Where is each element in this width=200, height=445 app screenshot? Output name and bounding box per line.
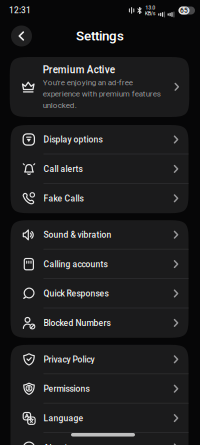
staticText: 65 — [180, 7, 188, 14]
staticText: Fake Calls — [43, 193, 83, 203]
button[interactable]: Blocked Numbers — [10, 308, 188, 338]
staticText: Quick Responses — [43, 289, 108, 299]
staticText: unlocked. — [43, 100, 77, 110]
staticText: About — [43, 443, 67, 445]
staticText: experience with premium features — [43, 89, 161, 99]
button[interactable]: Display options — [10, 125, 188, 154]
button[interactable]: Calling accounts — [10, 250, 188, 279]
staticText: Settings — [76, 28, 124, 44]
staticText: 13.0 — [145, 4, 155, 11]
staticText: Premium Active — [43, 64, 115, 76]
staticText: Calling accounts — [43, 259, 107, 269]
staticText: KB/s — [145, 10, 156, 16]
button[interactable]: Fake Calls — [10, 184, 188, 213]
staticText: 12:31 — [9, 6, 31, 15]
button[interactable]: Sound & vibration — [10, 220, 188, 250]
staticText: Sound & vibration — [43, 230, 111, 240]
staticText: Permissions — [43, 384, 89, 394]
staticText: Blocked Numbers — [43, 318, 110, 328]
button[interactable]: Quick Responses — [10, 279, 188, 308]
button[interactable]: Language — [10, 404, 188, 433]
staticText: Call alerts — [43, 164, 82, 174]
staticText: Display options — [43, 135, 102, 145]
button[interactable]: Premium Active — [0, 57, 200, 117]
button[interactable]: Privacy Policy — [10, 345, 188, 374]
button[interactable]: Back — [11, 25, 32, 46]
button[interactable]: Permissions — [10, 374, 188, 404]
staticText: Language — [43, 413, 83, 423]
button[interactable]: About — [10, 433, 188, 445]
staticText: Privacy Policy — [43, 354, 94, 364]
button[interactable]: Call alerts — [10, 154, 188, 184]
staticText: You're enjoying an ad-free — [43, 78, 133, 87]
